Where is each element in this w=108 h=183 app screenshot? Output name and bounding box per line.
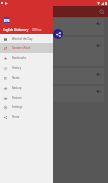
other: Pronounce: [96, 21, 101, 26]
staticText: Random Word: [12, 46, 31, 50]
button[interactable]: Bookmarks: [0, 53, 53, 63]
staticText: Settings: [12, 105, 23, 109]
button[interactable]: Share: [0, 112, 53, 122]
staticText: understandable: [7, 43, 37, 48]
staticText: Backup: [12, 86, 22, 90]
staticText: Bookmarks: [12, 56, 27, 60]
button[interactable]: Restore: [0, 93, 53, 103]
staticText: EN: [4, 18, 10, 23]
button[interactable]: History: [0, 63, 53, 73]
staticText: English Dictionary: [3, 28, 29, 32]
button[interactable]: Pronounce: [4, 18, 104, 35]
button[interactable]: Random Word: [0, 43, 53, 53]
button[interactable]: Pronounce: [4, 37, 104, 66]
button[interactable]: Settings: [0, 102, 53, 112]
other: Pronounce: [96, 43, 101, 48]
staticText: Offline: [32, 28, 42, 32]
button[interactable]: Word of the Day: [0, 34, 53, 44]
staticText: Notes: [12, 76, 20, 80]
button[interactable]: Notes: [0, 73, 53, 83]
button[interactable]: Share: [53, 29, 63, 39]
button[interactable]: Pronounce: [4, 68, 104, 84]
other: Pronounce: [96, 89, 101, 94]
button[interactable]: Backup: [0, 83, 53, 93]
button[interactable]: Search: [99, 9, 105, 15]
button[interactable]: Pronounce: [4, 86, 104, 102]
staticText: especially about one's actions or: [7, 54, 53, 58]
staticText: History: [12, 66, 22, 70]
staticText: Restore: [12, 96, 22, 100]
staticText: Word of the Day: [12, 37, 33, 41]
other: Pronounce: [96, 72, 101, 77]
staticText: Share: [12, 115, 20, 119]
